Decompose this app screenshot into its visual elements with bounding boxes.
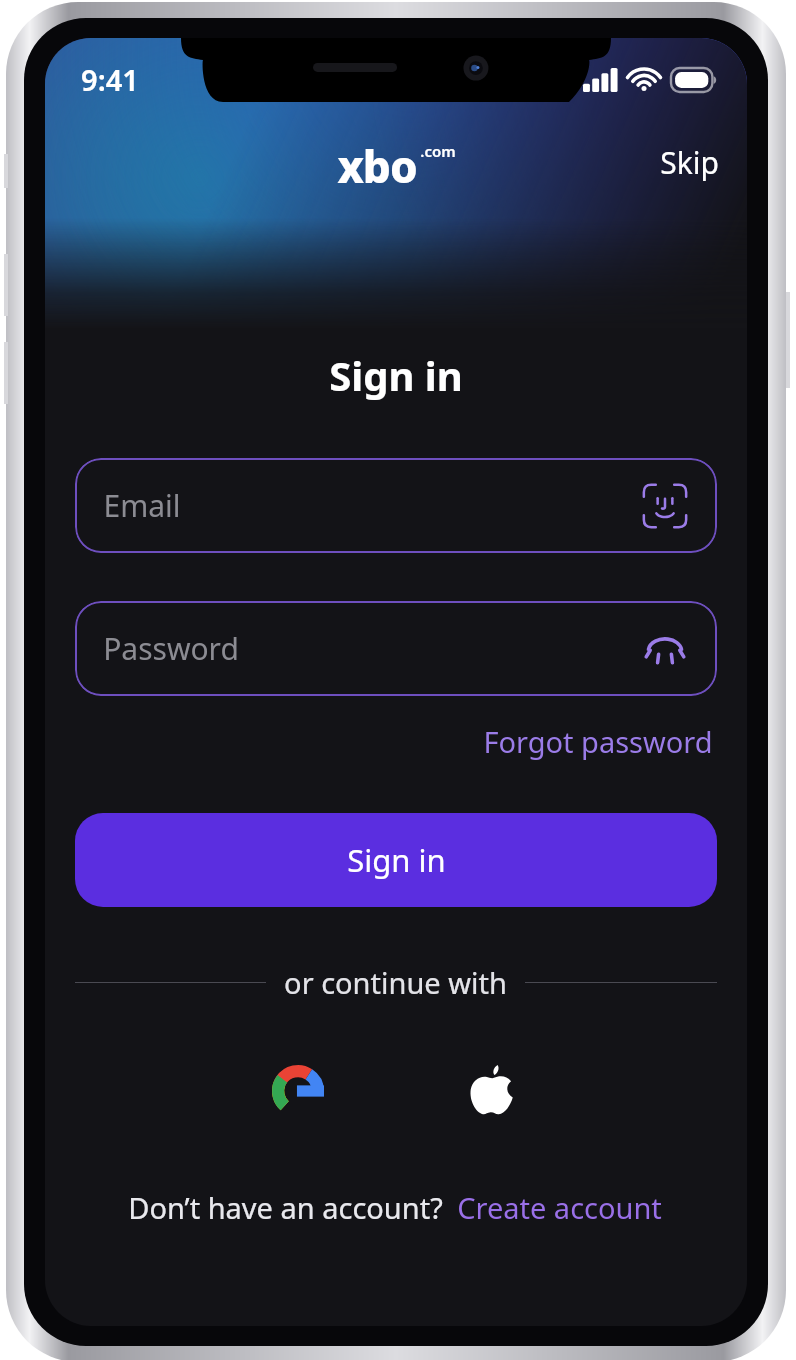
button[interactable]: Forgot password — [479, 718, 717, 765]
staticText: .com — [420, 141, 456, 161]
staticText: Sign in — [329, 348, 463, 402]
staticText: Password — [103, 628, 239, 669]
button[interactable]: Sign in — [75, 813, 717, 907]
staticText: xbo — [337, 136, 417, 196]
staticText: 9:41 — [81, 60, 139, 99]
button[interactable]: Sign in with Face ID — [641, 482, 689, 530]
staticText: Forgot password — [483, 722, 713, 761]
button[interactable]: Skip — [650, 136, 729, 189]
staticText: Skip — [660, 142, 719, 183]
staticText: Create account — [457, 1188, 662, 1227]
button[interactable]: Password — [75, 601, 717, 696]
staticText: Don’t have an account? — [128, 1188, 443, 1227]
button[interactable]: Create account — [455, 1184, 664, 1231]
button[interactable]: Continue with Apple — [457, 1054, 531, 1128]
staticText: Sign in — [347, 839, 446, 881]
staticText: Email — [103, 485, 181, 526]
button[interactable]: Email — [75, 458, 717, 553]
staticText: or continue with — [284, 963, 507, 1002]
button[interactable]: Continue with Google — [261, 1054, 335, 1128]
button[interactable]: Show password — [641, 625, 689, 673]
